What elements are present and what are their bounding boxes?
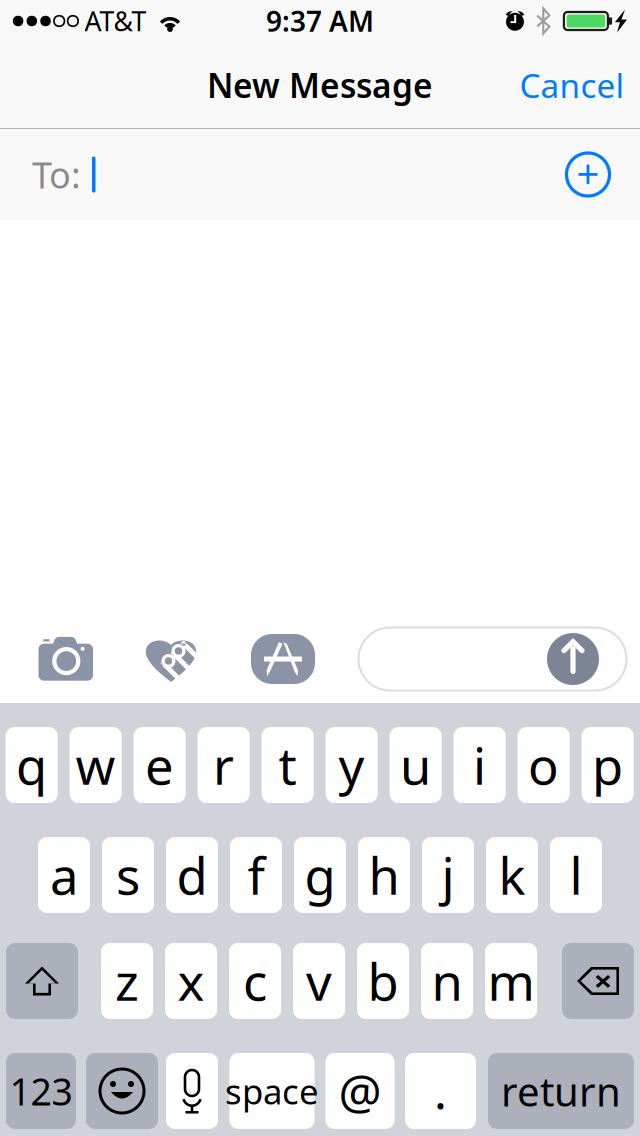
button[interactable]: Emoji [86,1053,158,1129]
button[interactable]: Camera [32,630,100,687]
button[interactable]: q [6,727,58,803]
button[interactable]: 123 [6,1053,76,1129]
button[interactable]: h [358,837,410,913]
button[interactable]: Shift [6,943,78,1019]
button[interactable]: space [229,1053,314,1129]
button[interactable]: u [390,727,442,803]
button[interactable]: x [165,943,217,1019]
button[interactable]: Digital Touch [139,629,203,689]
staticText: a [50,841,78,909]
staticText: h [368,841,399,909]
staticText: p [592,731,623,799]
button[interactable]: j [422,837,474,913]
button[interactable]: i [454,727,506,803]
button[interactable]: y [326,727,378,803]
staticText: To: [32,151,81,198]
staticText: g [304,841,335,909]
staticText: space [225,1068,319,1114]
staticText: Cancel [519,63,624,107]
button[interactable]: l [550,837,602,913]
staticText: z [115,947,139,1015]
staticText: r [213,731,234,799]
button[interactable]: Add contact [556,142,620,206]
staticText: e [145,731,174,799]
staticText: New Message [207,63,433,107]
button[interactable]: o [518,727,570,803]
button[interactable]: Delete [562,943,634,1019]
staticText: b [367,947,398,1015]
staticText: u [400,731,431,799]
staticText: q [16,731,47,799]
button[interactable]: n [421,943,473,1019]
button[interactable]: w [70,727,122,803]
staticText: j [441,841,454,909]
staticText: k [498,841,525,909]
button[interactable]: r [198,727,250,803]
staticText: 9:37 AM [266,2,374,40]
button[interactable]: v [293,943,345,1019]
button[interactable]: f [230,837,282,913]
staticText: m [487,947,534,1015]
button[interactable]: . [405,1053,476,1129]
button[interactable]: b [357,943,409,1019]
button[interactable]: c [229,943,281,1019]
staticText: l [569,841,582,909]
staticText: y [339,731,365,799]
staticText: w [76,731,116,799]
button[interactable]: d [166,837,218,913]
button[interactable]: @ [325,1053,394,1129]
button[interactable]: z [101,943,153,1019]
staticText: . [434,1059,447,1123]
button[interactable]: Dictation [166,1053,218,1129]
staticText: c [243,947,267,1015]
button[interactable]: s [102,837,154,913]
staticText: f [247,841,264,909]
button[interactable]: e [134,727,186,803]
staticText: d [176,841,207,909]
staticText: n [431,947,462,1015]
button[interactable]: a [38,837,90,913]
button[interactable]: m [485,943,537,1019]
button[interactable]: Cancel [501,45,640,125]
staticText: s [116,841,140,909]
button[interactable]: g [294,837,346,913]
staticText: v [306,947,332,1015]
button[interactable]: p [582,727,634,803]
staticText: t [279,731,297,799]
staticText: o [528,731,559,799]
staticText: AT&T [84,3,146,39]
button[interactable]: k [486,837,538,913]
staticText: x [177,947,204,1015]
staticText: i [473,731,486,799]
staticText: @ [338,1059,381,1123]
button[interactable]: Send [547,633,599,685]
button[interactable]: App Store [247,630,319,688]
staticText: return [501,1064,621,1117]
button[interactable]: t [262,727,314,803]
staticText: 123 [9,1066,72,1116]
button[interactable]: return [488,1053,634,1129]
